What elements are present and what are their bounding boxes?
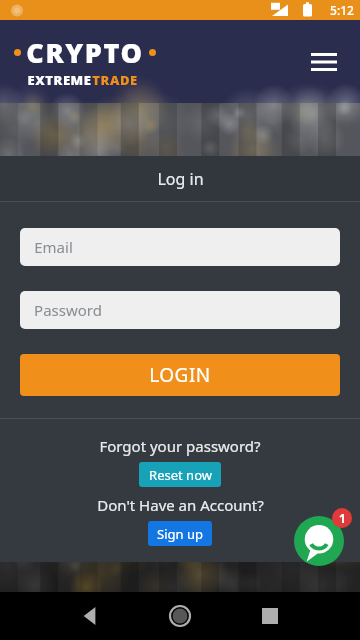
button[interactable]: Password	[20, 291, 340, 329]
staticText: Reset now	[149, 466, 212, 484]
staticText: TRADE	[92, 71, 138, 89]
staticText: LOGIN	[149, 362, 211, 388]
staticText: Sign up	[157, 525, 203, 543]
staticText: Forgot your password?	[99, 436, 261, 456]
staticText: 5:12	[330, 2, 354, 18]
button[interactable]: Sign up	[148, 521, 212, 546]
button[interactable]: Reset now	[139, 462, 221, 487]
staticText: Email	[34, 237, 73, 257]
staticText: Log in	[157, 168, 204, 190]
staticText: CRYPTO	[26, 34, 144, 71]
staticText: EXTREME	[27, 71, 92, 89]
button[interactable]: Email	[20, 228, 340, 266]
button[interactable]: Open chat	[294, 516, 344, 566]
staticText: 1	[339, 510, 346, 526]
staticText: Don't Have an Account?	[97, 495, 264, 515]
button[interactable]: Open navigation menu	[302, 40, 346, 84]
button[interactable]: LOGIN	[20, 354, 340, 396]
staticText: Password	[34, 300, 102, 320]
